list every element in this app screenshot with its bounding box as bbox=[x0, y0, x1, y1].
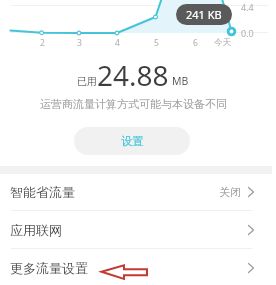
button[interactable]: 应用联网 bbox=[0, 211, 276, 248]
staticText: MB bbox=[172, 74, 189, 88]
staticText: 4 bbox=[115, 37, 120, 49]
staticText: 3 bbox=[77, 37, 82, 49]
staticText: 更多流量设置 bbox=[10, 260, 88, 276]
staticText: 设置 bbox=[121, 134, 144, 148]
staticText: 智能省流量 bbox=[10, 184, 75, 200]
staticText: 241 KB bbox=[186, 7, 222, 22]
button[interactable]: 智能省流量 bbox=[0, 174, 276, 210]
staticText: 6 bbox=[193, 37, 198, 49]
staticText: 0.0 bbox=[241, 27, 254, 39]
button[interactable]: 更多流量设置 bbox=[0, 249, 276, 285]
staticText: 关闭 bbox=[219, 185, 241, 199]
staticText: 24.88 bbox=[97, 56, 169, 94]
staticText: 2 bbox=[40, 37, 45, 49]
staticText: 今天 bbox=[214, 37, 231, 48]
staticText: 已用 bbox=[77, 75, 97, 88]
staticText: 应用联网 bbox=[10, 222, 62, 238]
button[interactable]: 设置 bbox=[74, 127, 190, 155]
staticText: 5 bbox=[154, 37, 159, 49]
staticText: 4.4 bbox=[241, 1, 254, 13]
staticText: 运营商流量计算方式可能与本设备不同 bbox=[40, 97, 227, 111]
